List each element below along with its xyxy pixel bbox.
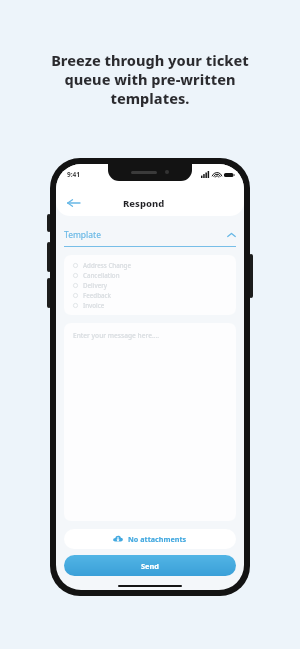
staticText: No attachments [128, 534, 187, 544]
staticText: Enter your message here.... [73, 331, 160, 340]
button[interactable]: Back [62, 192, 84, 214]
staticText: Send [141, 561, 159, 571]
staticText: Cancellation [83, 271, 120, 279]
staticText: 9:41 [67, 170, 80, 179]
staticText: Invoice [83, 301, 105, 309]
button[interactable]: Cancellation [73, 270, 227, 280]
staticText: Address Change [83, 261, 132, 269]
button[interactable]: Delivery [73, 280, 227, 290]
staticText: Template [64, 229, 101, 241]
staticText: Feedback [83, 291, 112, 299]
button[interactable]: Template [64, 226, 236, 247]
button[interactable]: Invoice [73, 300, 227, 310]
button[interactable]: No attachments [64, 529, 236, 549]
staticText: Breeze through your ticket queue with pr… [51, 50, 249, 108]
button[interactable]: Send [64, 555, 236, 576]
button[interactable]: Feedback [73, 290, 227, 300]
button[interactable]: Address Change [73, 260, 227, 270]
staticText: Respond [123, 197, 165, 210]
staticText: Delivery [83, 281, 108, 289]
